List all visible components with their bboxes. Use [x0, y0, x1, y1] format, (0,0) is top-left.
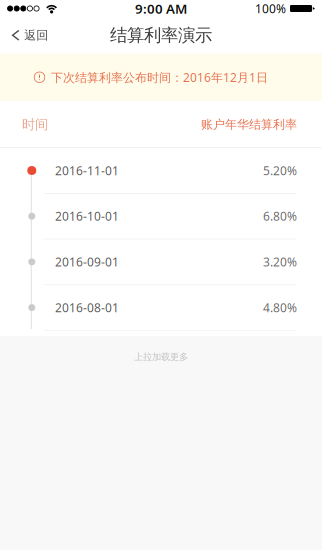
- staticText: 2016-10-01: [55, 208, 119, 224]
- button[interactable]: 返回: [0, 17, 58, 53]
- staticText: 2016-11-01: [55, 162, 119, 178]
- button[interactable]: 2016-09-01: [0, 239, 322, 285]
- button[interactable]: 2016-10-01: [0, 194, 322, 239]
- staticText: 6.80%: [263, 208, 297, 224]
- staticText: 2016-08-01: [55, 300, 119, 315]
- button[interactable]: 上拉加载更多: [0, 336, 322, 378]
- staticText: 3.20%: [263, 254, 297, 270]
- staticText: 返回: [24, 28, 48, 43]
- button[interactable]: 2016-11-01: [0, 148, 322, 194]
- button[interactable]: 2016-08-01: [0, 285, 322, 331]
- staticText: 时间: [22, 116, 48, 133]
- staticText: 下次结算利率公布时间：2016年12月1日: [51, 69, 268, 85]
- staticText: 5.20%: [263, 162, 297, 178]
- staticText: 2016-09-01: [55, 254, 119, 270]
- staticText: 9:00 AM: [135, 0, 187, 17]
- staticText: 上拉加载更多: [134, 351, 188, 363]
- staticText: 账户年华结算利率: [201, 117, 297, 132]
- staticText: 100%: [255, 0, 286, 16]
- staticText: 4.80%: [263, 300, 297, 315]
- staticText: 结算利率演示: [110, 25, 212, 46]
